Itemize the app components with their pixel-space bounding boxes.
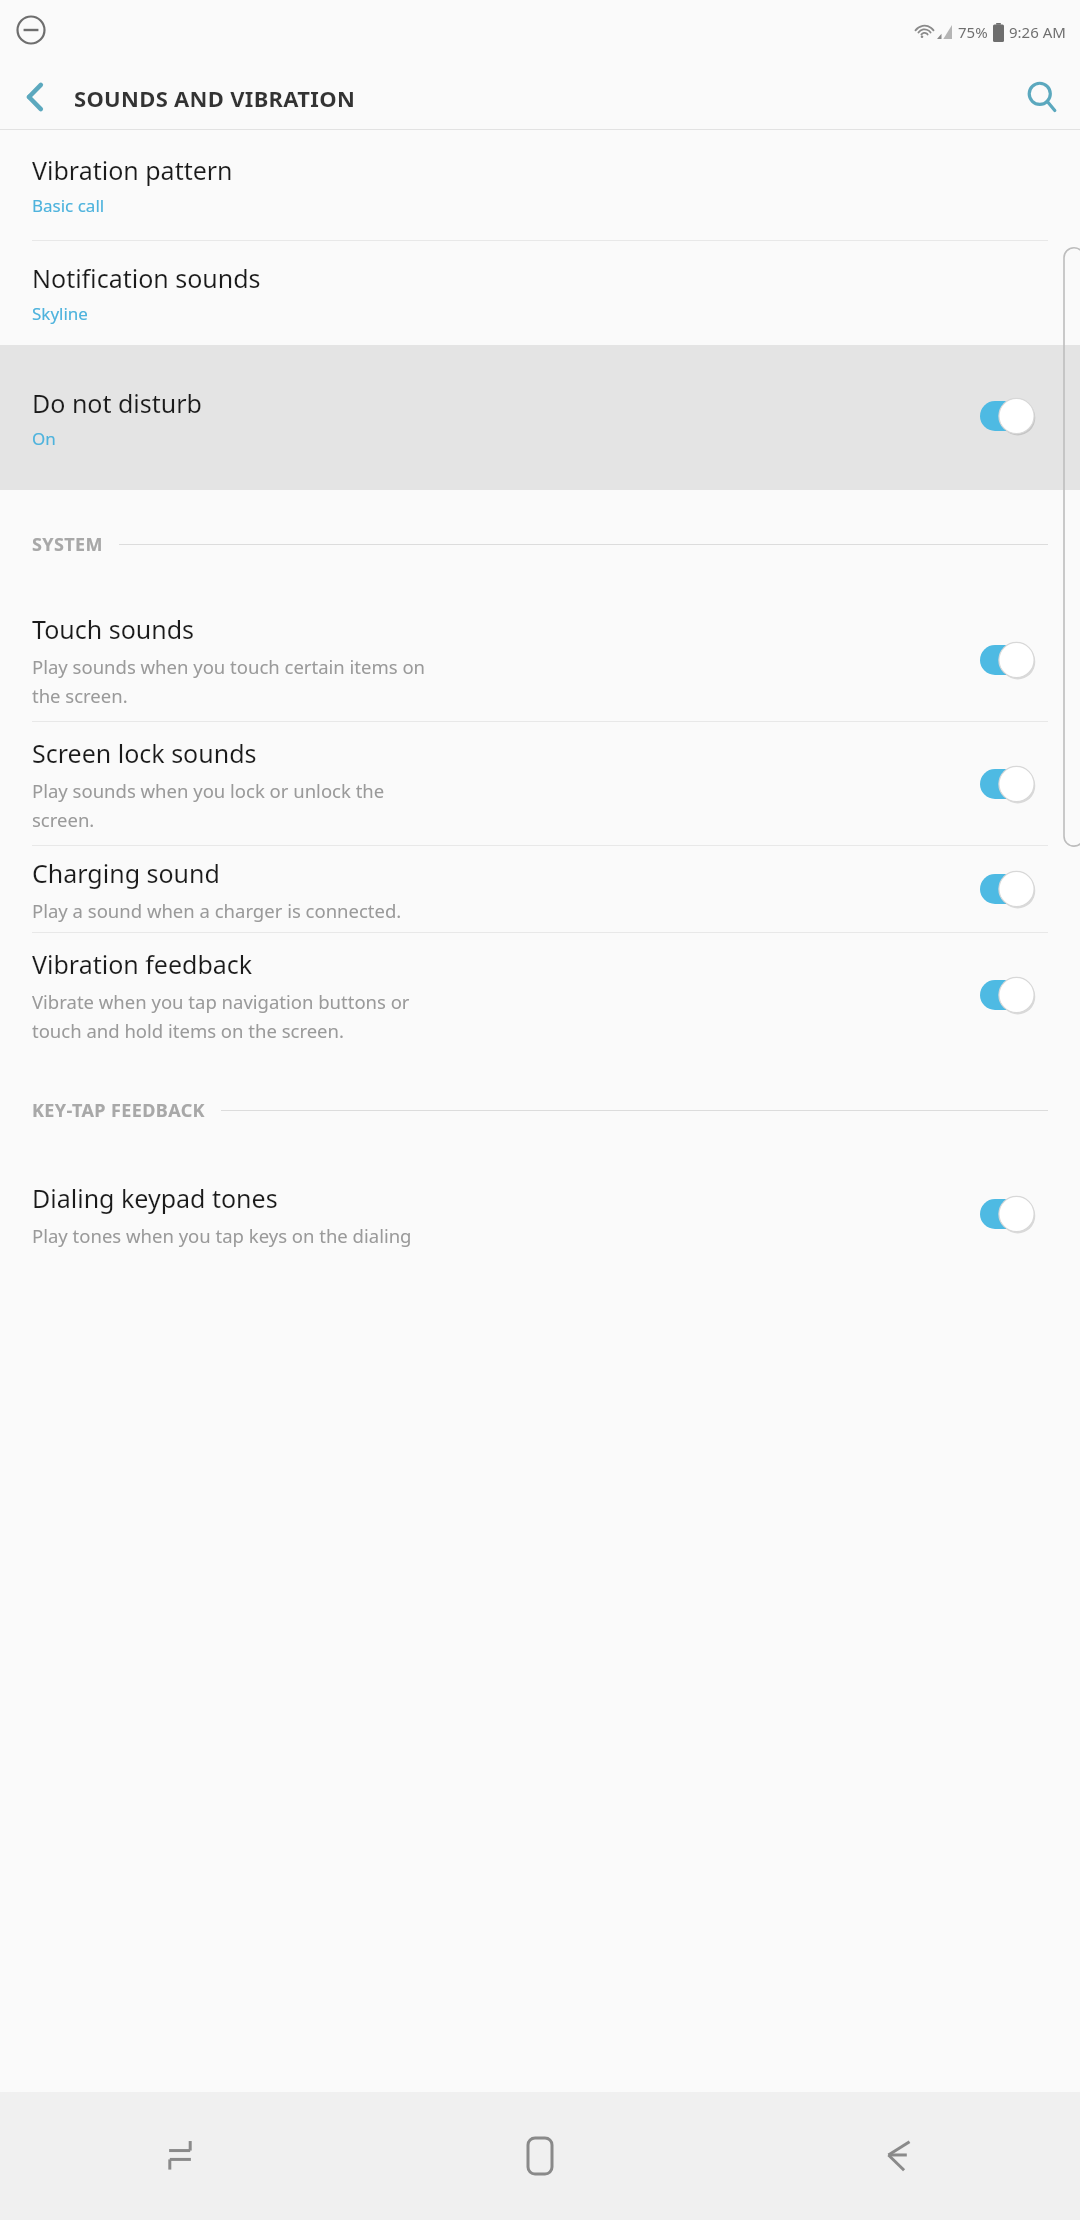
button[interactable]: Toggle: [978, 973, 1048, 1017]
staticText: the screen.: [32, 683, 128, 708]
staticText: Charging sound: [32, 856, 220, 890]
button[interactable]: Back: [0, 64, 72, 130]
staticText: Notification sounds: [32, 261, 261, 295]
staticText: 75%: [958, 22, 988, 42]
button[interactable]: Back: [720, 2092, 1080, 2220]
button[interactable]: Toggle: [978, 762, 1048, 806]
staticText: Dialing keypad tones: [32, 1181, 278, 1215]
staticText: Play a sound when a charger is connected…: [32, 898, 402, 923]
staticText: touch and hold items on the screen.: [32, 1018, 344, 1043]
button[interactable]: Dialing keypad tones: [0, 1164, 1080, 1264]
button[interactable]: Toggle: [978, 1192, 1048, 1236]
staticText: On: [32, 427, 56, 450]
staticText: Touch sounds: [32, 612, 195, 646]
button[interactable]: Do not disturb: [0, 345, 1080, 490]
staticText: Do not disturb: [32, 386, 202, 420]
staticText: 9:26 AM: [1009, 22, 1066, 42]
button[interactable]: Vibration pattern: [0, 130, 1080, 240]
button[interactable]: Vibration feedback: [0, 933, 1080, 1056]
button[interactable]: Search: [1004, 64, 1080, 130]
button[interactable]: Screen lock sounds: [0, 722, 1080, 845]
staticText: Skyline: [32, 302, 88, 325]
staticText: SOUNDS AND VIBRATION: [74, 83, 356, 113]
staticText: KEY-TAP FEEDBACK: [32, 1098, 205, 1123]
button[interactable]: Toggle: [978, 394, 1048, 438]
button[interactable]: Charging sound: [0, 846, 1080, 932]
staticText: Play tones when you tap keys on the dial…: [32, 1223, 412, 1248]
staticText: SYSTEM: [32, 532, 103, 557]
button[interactable]: Home: [360, 2092, 720, 2220]
button[interactable]: Recents: [0, 2092, 360, 2220]
staticText: screen.: [32, 807, 95, 832]
staticText: Screen lock sounds: [32, 736, 257, 770]
staticText: Vibrate when you tap navigation buttons …: [32, 989, 410, 1014]
button[interactable]: Toggle: [978, 867, 1048, 911]
button[interactable]: Toggle: [978, 638, 1048, 682]
staticText: Vibration pattern: [32, 153, 233, 187]
staticText: Play sounds when you lock or unlock the: [32, 778, 385, 803]
staticText: Vibration feedback: [32, 947, 253, 981]
button[interactable]: Notification sounds: [0, 241, 1080, 345]
button[interactable]: Touch sounds: [0, 598, 1080, 721]
staticText: Play sounds when you touch certain items…: [32, 654, 426, 679]
staticText: Basic call: [32, 194, 105, 217]
